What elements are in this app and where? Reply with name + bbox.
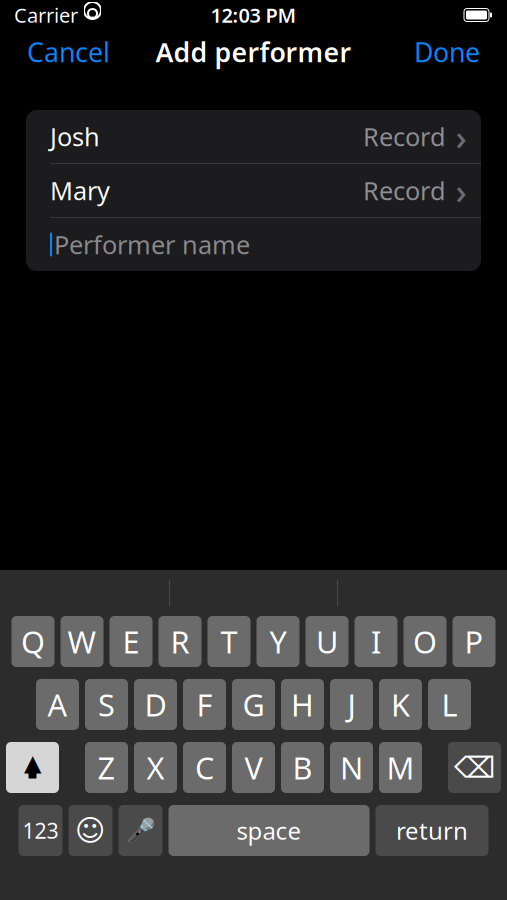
staticText: K xyxy=(391,684,410,725)
staticText: F xyxy=(196,684,212,725)
button[interactable]: Shift xyxy=(6,742,59,793)
staticText: I xyxy=(371,621,381,662)
staticText: Cancel xyxy=(27,34,110,70)
staticText: Done xyxy=(414,34,480,70)
button[interactable]: B xyxy=(281,742,324,793)
button[interactable]: J xyxy=(330,679,373,730)
staticText: H xyxy=(291,684,314,725)
button[interactable]: M xyxy=(379,742,422,793)
staticText: T xyxy=(220,621,237,662)
button[interactable]: Emoji xyxy=(68,805,112,856)
button[interactable]: space xyxy=(168,805,369,856)
button[interactable]: 123 xyxy=(18,805,62,856)
staticText: S xyxy=(98,684,115,725)
button[interactable]: Delete xyxy=(448,742,501,793)
button[interactable]: C xyxy=(183,742,226,793)
staticText: W xyxy=(67,621,96,662)
button[interactable]: Mary xyxy=(26,164,481,217)
button[interactable]: K xyxy=(379,679,422,730)
staticText: E xyxy=(122,621,139,662)
button[interactable]: I xyxy=(354,616,397,667)
staticText: Carrier xyxy=(14,2,78,28)
staticText: Q xyxy=(21,621,45,662)
button[interactable]: Josh xyxy=(26,110,481,163)
staticText: U xyxy=(316,621,338,662)
staticText: Record xyxy=(363,120,446,153)
button[interactable]: R xyxy=(158,616,201,667)
staticText: Y xyxy=(269,621,286,662)
staticText: › xyxy=(455,113,466,159)
staticText: Mary xyxy=(50,174,110,207)
button[interactable]: Dictation xyxy=(118,805,162,856)
button[interactable]: E xyxy=(109,616,152,667)
staticText: G xyxy=(242,684,264,725)
staticText: C xyxy=(195,747,214,788)
button[interactable]: D xyxy=(134,679,177,730)
button[interactable]: return xyxy=(375,805,488,856)
staticText: V xyxy=(244,747,262,788)
staticText: space xyxy=(236,815,301,846)
button[interactable]: U xyxy=(305,616,348,667)
staticText: ⌫ xyxy=(454,751,495,784)
staticText: M xyxy=(386,747,414,788)
staticText: N xyxy=(340,747,363,788)
button[interactable]: F xyxy=(183,679,226,730)
button[interactable]: X xyxy=(134,742,177,793)
staticText: 12:03 PM xyxy=(210,2,296,28)
button[interactable]: O xyxy=(403,616,446,667)
button[interactable]: Cancel xyxy=(17,26,120,78)
button[interactable]: A xyxy=(36,679,79,730)
button[interactable]: W xyxy=(60,616,103,667)
button[interactable]: G xyxy=(232,679,275,730)
staticText: › xyxy=(455,167,466,213)
staticText: A xyxy=(47,684,67,725)
staticText: L xyxy=(441,684,457,725)
staticText: Z xyxy=(97,747,115,788)
staticText: B xyxy=(292,747,312,788)
staticText: ☺ xyxy=(75,814,106,847)
staticText: Performer name xyxy=(54,228,250,261)
button[interactable]: P xyxy=(452,616,495,667)
staticText: Add performer xyxy=(155,34,351,70)
staticText: ▲ xyxy=(24,750,41,776)
staticText: X xyxy=(146,747,164,788)
button[interactable]: N xyxy=(330,742,373,793)
button[interactable]: Q xyxy=(11,616,54,667)
button[interactable]: T xyxy=(207,616,250,667)
button[interactable]: V xyxy=(232,742,275,793)
staticText: Josh xyxy=(50,120,100,153)
staticText: 🎤 xyxy=(125,817,155,844)
staticText: D xyxy=(144,684,166,725)
button[interactable]: Done xyxy=(404,26,490,78)
button[interactable]: S xyxy=(85,679,128,730)
button[interactable]: Z xyxy=(85,742,128,793)
staticText: return xyxy=(396,815,468,846)
staticText: Record xyxy=(363,174,446,207)
staticText: J xyxy=(347,684,355,725)
staticText: P xyxy=(464,621,483,662)
button[interactable]: H xyxy=(281,679,324,730)
button[interactable]: L xyxy=(428,679,471,730)
staticText: 123 xyxy=(22,816,58,845)
staticText: O xyxy=(413,621,437,662)
staticText: R xyxy=(170,621,189,662)
button[interactable]: Y xyxy=(256,616,299,667)
